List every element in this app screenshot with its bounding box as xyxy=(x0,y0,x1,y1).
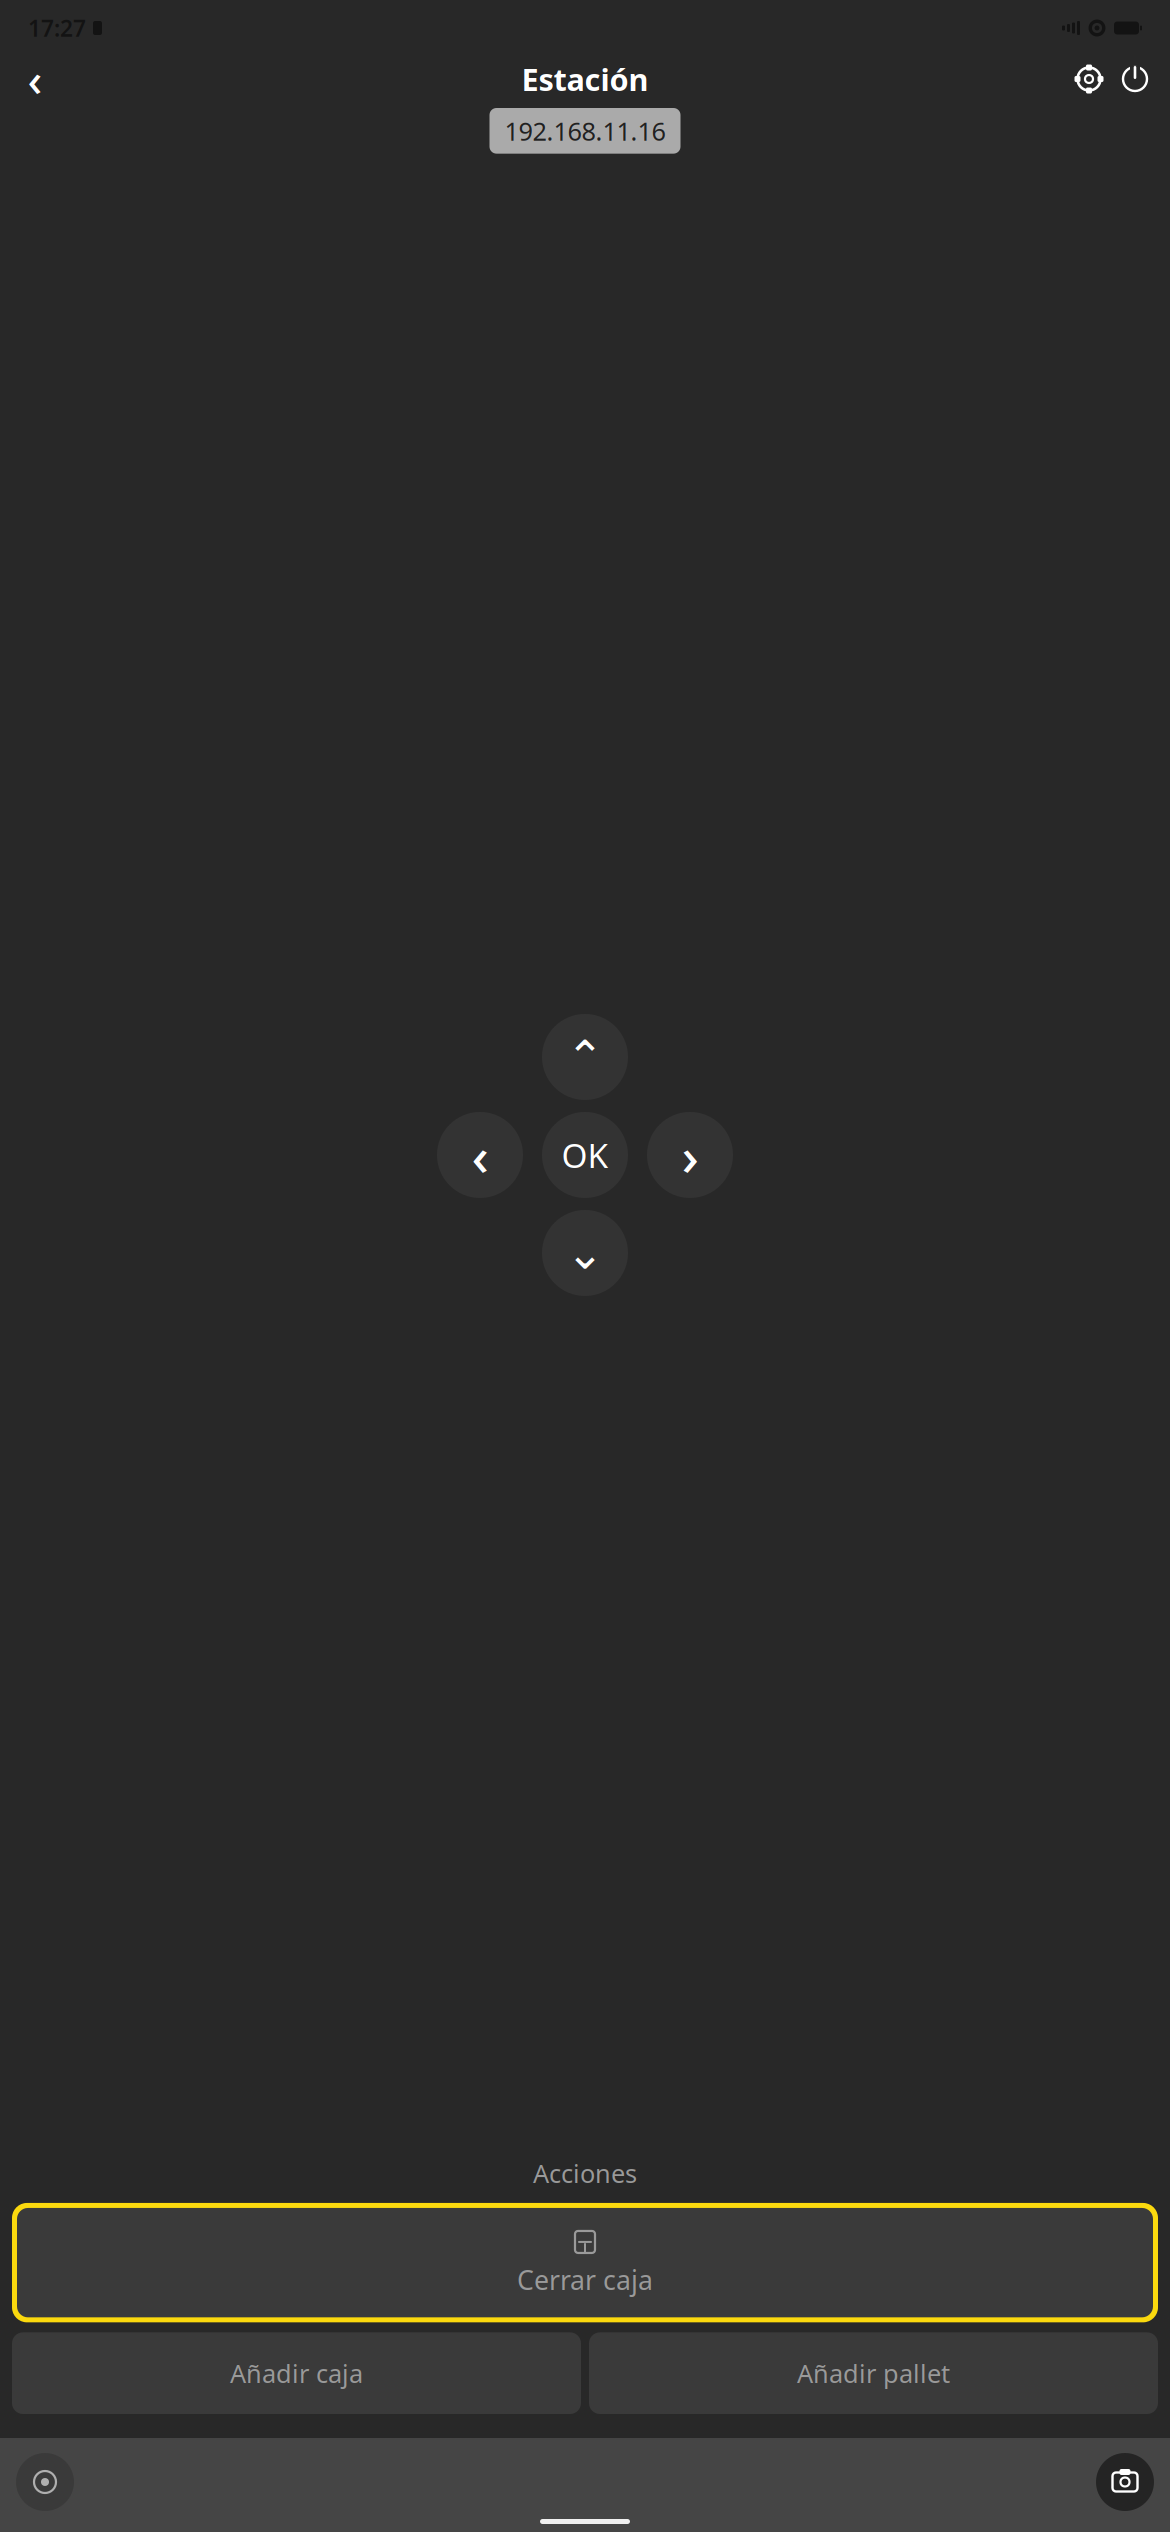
staticText: ⌄ xyxy=(566,1227,604,1279)
staticText: Cerrar caja xyxy=(517,2262,653,2297)
staticText: Añadir caja xyxy=(230,2356,363,2390)
button[interactable]: Settings xyxy=(1066,56,1112,102)
button[interactable]: Up xyxy=(537,1014,632,1100)
button[interactable]: Añadir pallet xyxy=(589,2332,1158,2414)
staticText: Añadir pallet xyxy=(797,2356,950,2390)
button[interactable]: Left xyxy=(432,1112,527,1198)
button[interactable]: Right xyxy=(642,1112,737,1198)
staticText: Acciones xyxy=(533,2156,637,2190)
button[interactable]: Down xyxy=(537,1210,632,1296)
button[interactable]: Cerrar caja xyxy=(12,2203,1158,2322)
staticText: › xyxy=(681,1120,698,1190)
staticText: Estación xyxy=(521,59,648,99)
button[interactable]: Power xyxy=(1112,56,1158,102)
staticText: ‹ xyxy=(27,49,42,109)
staticText: 192.168.11.16 xyxy=(504,114,665,148)
button[interactable]: Back xyxy=(12,56,58,102)
staticText: ⌃ xyxy=(566,1031,604,1083)
button[interactable]: Añadir caja xyxy=(12,2332,581,2414)
staticText: OK xyxy=(561,1133,608,1177)
button[interactable]: OK xyxy=(537,1112,632,1198)
staticText: 17:27 xyxy=(28,13,86,43)
button[interactable]: Preview xyxy=(16,2453,74,2511)
button[interactable]: Camera xyxy=(1096,2453,1154,2511)
staticText: ‹ xyxy=(471,1120,488,1190)
